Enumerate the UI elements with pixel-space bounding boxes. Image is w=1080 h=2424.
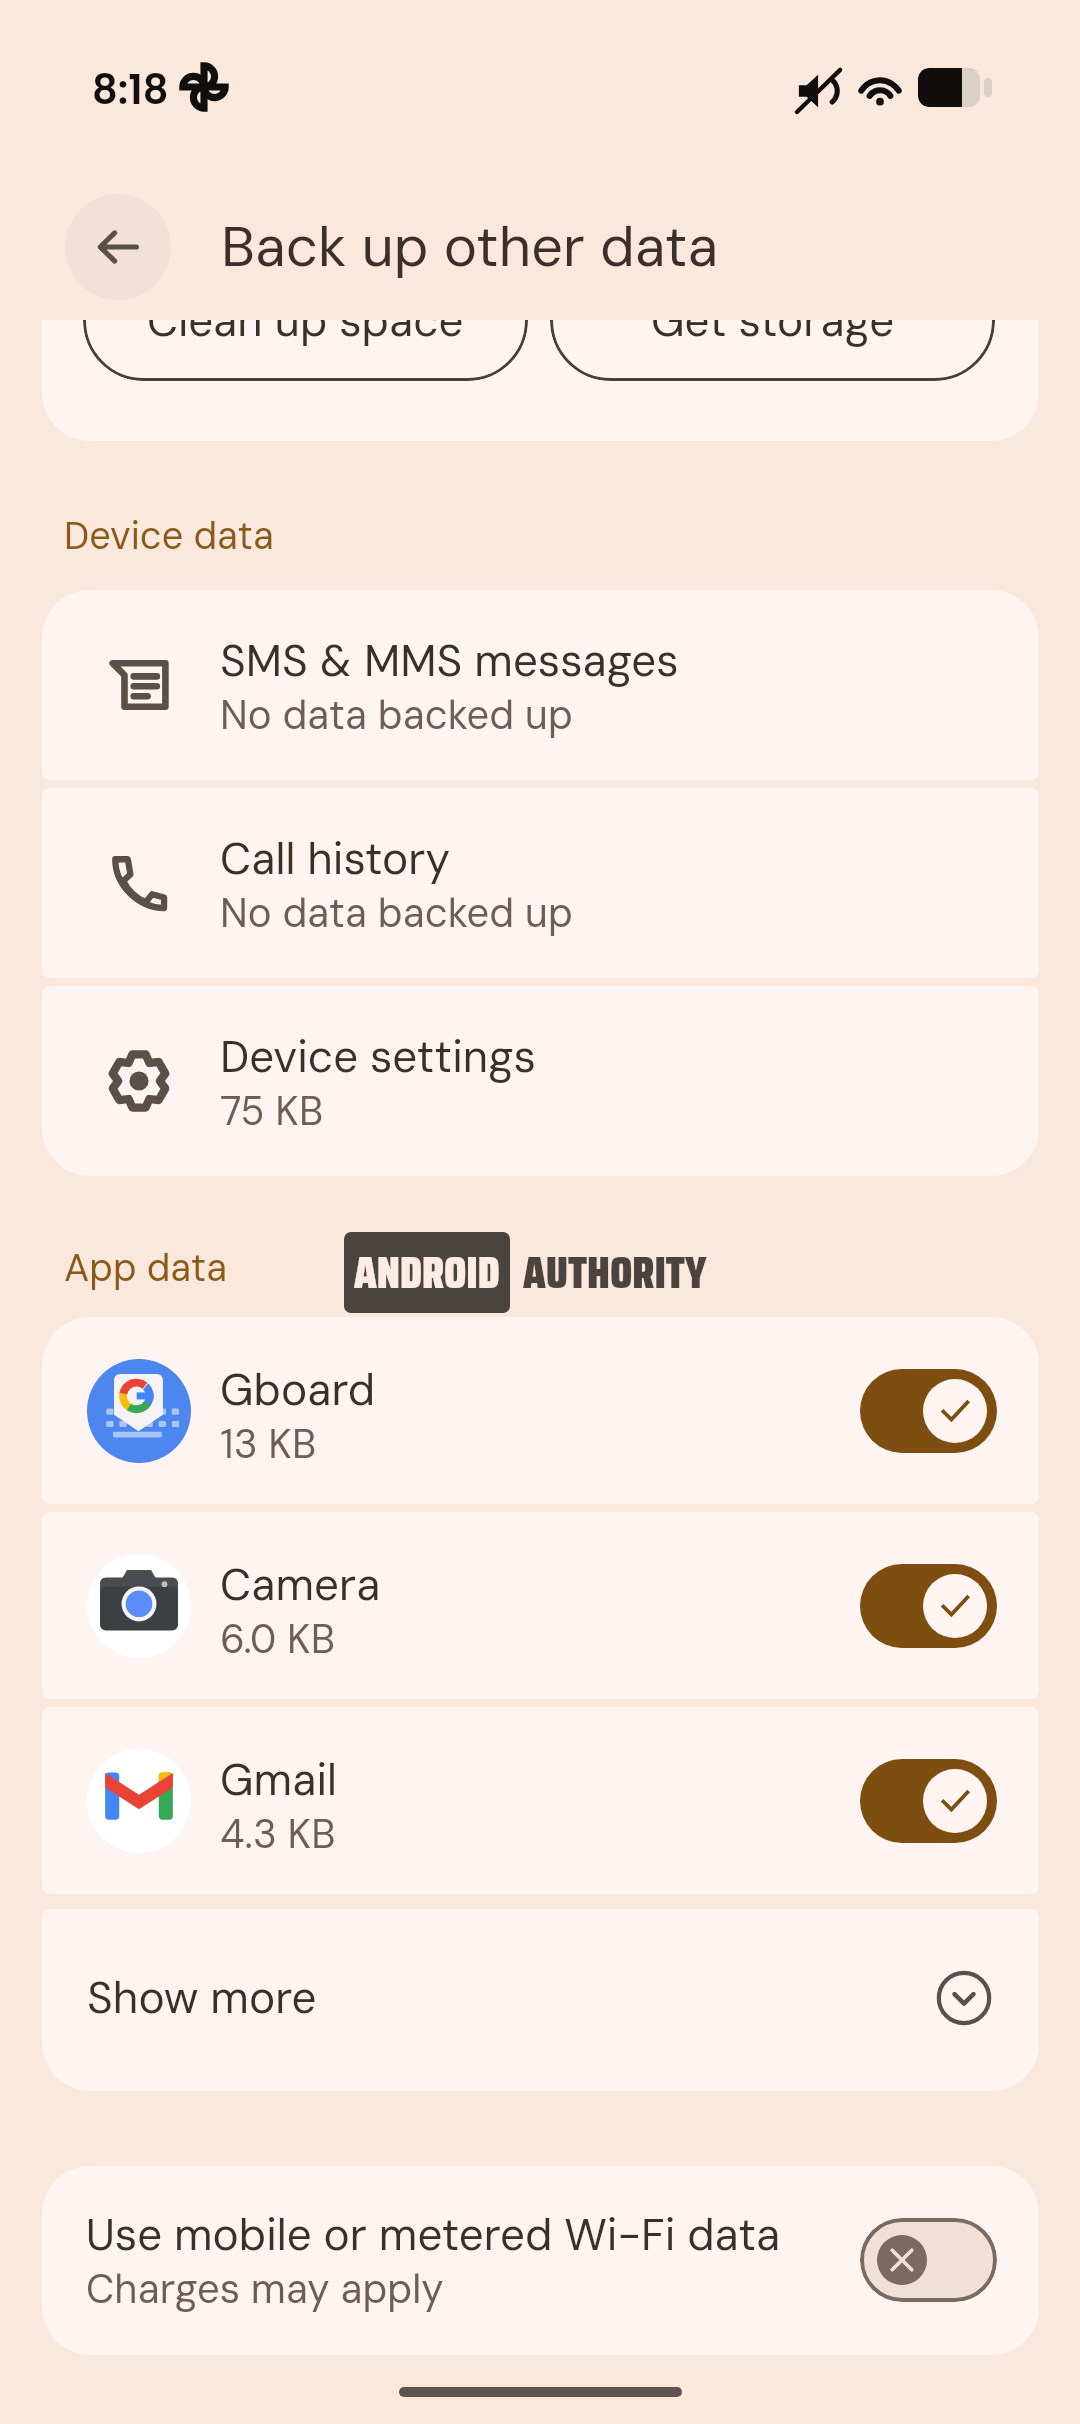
button[interactable]: Call history (42, 788, 1039, 978)
staticText: 8:18 (92, 62, 169, 118)
staticText: 6.0 KB (220, 1613, 335, 1665)
staticText: Call history (220, 830, 450, 887)
button[interactable]: SMS & MMS messages (42, 590, 1039, 780)
staticText: 75 KB (220, 1085, 324, 1137)
button[interactable]: Gmail (42, 1707, 1039, 1894)
button[interactable]: Use mobile or metered Wi-Fi data (42, 2166, 1039, 2355)
staticText: Camera (220, 1556, 381, 1613)
staticText: Charges may apply (86, 2263, 444, 2315)
staticText: Show more (87, 1969, 317, 2026)
button[interactable]: Backup toggle (860, 1369, 997, 1453)
staticText: ANDROID (354, 1238, 500, 1307)
button[interactable]: Use mobile or metered Wi-Fi data toggle (860, 2218, 997, 2302)
button[interactable]: Camera (42, 1512, 1039, 1699)
button[interactable]: Device settings (42, 986, 1039, 1176)
button[interactable]: Backup toggle (860, 1759, 997, 1843)
staticText: SMS & MMS messages (220, 632, 679, 689)
button[interactable]: Show more (42, 1909, 1039, 2091)
staticText: Back up other data (221, 210, 719, 283)
staticText: AUTHORITY (523, 1238, 707, 1307)
staticText: 13 KB (220, 1418, 317, 1470)
button[interactable]: Backup toggle (860, 1564, 997, 1648)
staticText: Use mobile or metered Wi-Fi data (86, 2206, 781, 2263)
staticText: Gboard (220, 1361, 376, 1418)
button[interactable]: Back (65, 194, 171, 300)
button[interactable]: Clean up space (83, 320, 528, 381)
staticText: Gmail (220, 1751, 337, 1808)
staticText: Device data (64, 511, 274, 560)
staticText: Device settings (220, 1028, 536, 1085)
staticText: Clean up space (147, 320, 464, 349)
staticText: App data (64, 1243, 228, 1292)
staticText: No data backed up (220, 689, 573, 741)
button[interactable]: Gboard (42, 1317, 1039, 1504)
staticText: 4.3 KB (220, 1808, 336, 1860)
staticText: No data backed up (220, 887, 573, 939)
button[interactable]: Get storage (550, 320, 995, 381)
staticText: Get storage (651, 320, 895, 349)
